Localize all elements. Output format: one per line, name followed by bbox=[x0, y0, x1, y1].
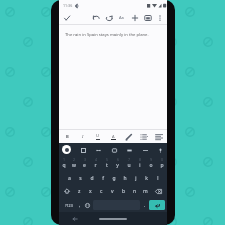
button[interactable]: Period bbox=[141, 200, 148, 210]
staticText: 11:36 bbox=[63, 3, 73, 8]
button[interactable]: k bbox=[141, 170, 152, 184]
button[interactable]: v bbox=[107, 184, 118, 198]
button[interactable]: 2 bbox=[69, 156, 79, 170]
staticText: o bbox=[149, 162, 153, 169]
button[interactable]: 0 bbox=[156, 156, 167, 170]
staticText: u bbox=[127, 162, 131, 169]
button[interactable]: Google bbox=[62, 145, 71, 154]
staticText: n bbox=[133, 188, 137, 195]
button[interactable]: Text colour bbox=[109, 132, 118, 141]
button[interactable]: Alignment bbox=[154, 132, 163, 141]
staticText: B bbox=[66, 134, 69, 140]
button[interactable]: Enter bbox=[149, 200, 165, 210]
staticText: 0 bbox=[161, 158, 163, 162]
button[interactable]: f bbox=[97, 170, 108, 184]
staticText: 9 bbox=[150, 158, 152, 162]
staticText: f bbox=[102, 175, 104, 182]
button[interactable]: ?123 bbox=[61, 200, 76, 210]
staticText: k bbox=[145, 175, 148, 182]
staticText: v bbox=[111, 188, 114, 195]
staticText: g bbox=[112, 175, 116, 182]
button[interactable]: n bbox=[129, 184, 140, 198]
staticText: m bbox=[143, 188, 148, 195]
button[interactable]: Keyboard tool 0 bbox=[79, 146, 87, 154]
button[interactable]: Highlight bbox=[124, 132, 133, 141]
button[interactable]: List bbox=[139, 132, 148, 141]
staticText: t bbox=[106, 162, 108, 169]
button[interactable]: Italic bbox=[78, 132, 87, 141]
button[interactable]: 7 bbox=[123, 156, 134, 170]
button[interactable]: x bbox=[85, 184, 96, 198]
staticText: U bbox=[96, 133, 100, 139]
button[interactable]: 5 bbox=[101, 156, 112, 170]
button[interactable]: Redo bbox=[104, 13, 113, 22]
button[interactable]: a bbox=[63, 170, 75, 184]
staticText: d bbox=[90, 175, 94, 182]
staticText: i bbox=[139, 162, 141, 169]
button[interactable]: s bbox=[75, 170, 86, 184]
staticText: ?123 bbox=[65, 203, 73, 208]
staticText: 8 bbox=[139, 158, 141, 162]
staticText: x bbox=[89, 188, 92, 195]
staticText: q bbox=[62, 162, 66, 169]
staticText: The rain in Spain stays mainly in the pl… bbox=[65, 32, 149, 38]
button[interactable]: 4 bbox=[90, 156, 101, 170]
button[interactable]: Keyboard tool 5 bbox=[156, 146, 164, 154]
staticText: 6 bbox=[117, 158, 119, 162]
staticText: c bbox=[100, 188, 103, 195]
button[interactable]: m bbox=[140, 184, 151, 198]
button[interactable]: z bbox=[74, 184, 85, 198]
staticText: 1 bbox=[63, 158, 65, 162]
staticText: A bbox=[112, 134, 115, 139]
button[interactable]: Add bbox=[130, 13, 139, 22]
button[interactable]: 1 bbox=[59, 156, 69, 170]
button[interactable]: Undo bbox=[91, 13, 100, 22]
staticText: e bbox=[83, 162, 86, 169]
button[interactable]: Done bbox=[62, 13, 71, 22]
staticText: 3 bbox=[84, 158, 86, 162]
button[interactable]: Emoji bbox=[83, 200, 92, 210]
button[interactable]: Underline bbox=[93, 132, 102, 141]
button[interactable]: c bbox=[96, 184, 107, 198]
button[interactable]: Keyboard tool 3 bbox=[125, 146, 133, 154]
staticText: 7 bbox=[128, 158, 130, 162]
button[interactable]: Back bbox=[59, 212, 91, 225]
button[interactable]: Formatting bbox=[117, 13, 126, 22]
staticText: a bbox=[68, 175, 71, 182]
button[interactable]: 6 bbox=[112, 156, 123, 170]
button[interactable]: Keyboard tool 1 bbox=[94, 146, 102, 154]
staticText: j bbox=[135, 175, 137, 182]
button[interactable]: j bbox=[130, 170, 141, 184]
button[interactable]: Comma bbox=[76, 200, 83, 210]
staticText: l bbox=[157, 175, 159, 182]
button[interactable]: Bold bbox=[63, 132, 72, 141]
staticText: , bbox=[79, 202, 81, 208]
button[interactable]: 9 bbox=[145, 156, 156, 170]
staticText: Aa bbox=[119, 15, 124, 20]
button[interactable]: d bbox=[86, 170, 97, 184]
staticText: b bbox=[122, 188, 126, 195]
button[interactable]: Shift bbox=[60, 184, 74, 198]
button[interactable]: 3 bbox=[79, 156, 90, 170]
button[interactable]: l bbox=[152, 170, 163, 184]
button[interactable]: Home bbox=[91, 212, 135, 225]
staticText: p bbox=[160, 162, 164, 169]
button[interactable]: b bbox=[118, 184, 129, 198]
button[interactable]: h bbox=[119, 170, 130, 184]
staticText: 4 bbox=[95, 158, 97, 162]
staticText: r bbox=[94, 162, 97, 169]
button[interactable]: 8 bbox=[134, 156, 145, 170]
staticText: . bbox=[144, 202, 146, 208]
button[interactable]: More options bbox=[155, 13, 164, 22]
staticText: 5 bbox=[106, 158, 108, 162]
staticText: 2 bbox=[73, 158, 75, 162]
button[interactable]: g bbox=[108, 170, 119, 184]
staticText: I bbox=[82, 134, 84, 140]
staticText: y bbox=[116, 162, 119, 169]
button[interactable]: Image bbox=[143, 13, 152, 22]
staticText: h bbox=[123, 175, 127, 182]
button[interactable]: Keyboard tool 2 bbox=[110, 146, 118, 154]
button[interactable]: Keyboard tool 4 bbox=[141, 146, 149, 154]
button[interactable]: Backspace bbox=[151, 184, 166, 198]
